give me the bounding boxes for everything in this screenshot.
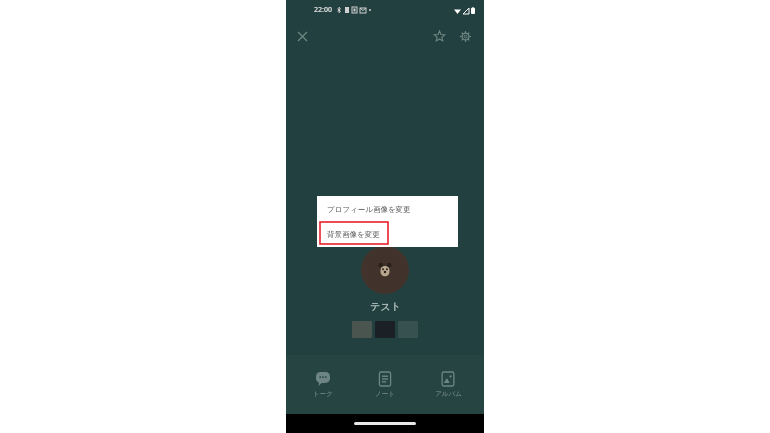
staticText: テスト: [370, 300, 401, 313]
staticText: ノート: [375, 390, 395, 398]
button[interactable]: Settings: [454, 25, 476, 47]
staticText: プロフィール画像を変更: [327, 205, 411, 214]
button[interactable]: Close: [291, 25, 313, 47]
staticText: トーク: [313, 390, 333, 398]
button[interactable]: プロフィール画像を変更: [317, 196, 458, 222]
button[interactable]: Talk: [297, 369, 349, 398]
button[interactable]: Note: [359, 369, 411, 398]
button[interactable]: Album: [422, 369, 474, 398]
button[interactable]: Favorite: [428, 25, 450, 47]
staticText: 22:00: [314, 5, 332, 15]
button[interactable]: 背景画像を変更: [317, 222, 458, 247]
staticText: 背景画像を変更: [327, 230, 380, 239]
staticText: アルバム: [435, 390, 462, 398]
button[interactable]: Profile image: [361, 246, 409, 294]
